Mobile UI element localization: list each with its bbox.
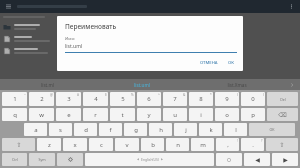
staticText: y [147,111,151,119]
button[interactable]: l [224,123,247,136]
button[interactable]: y [137,108,161,121]
button[interactable]: , [216,138,239,151]
button[interactable]: ▶ [272,153,298,166]
button[interactable]: h [149,123,172,136]
button[interactable]: 0 [241,92,265,106]
button[interactable]: ◀ [244,153,270,166]
button[interactable]: Menu [4,2,13,11]
button[interactable]: p [241,108,265,121]
button[interactable] [0,33,300,45]
button[interactable]: ОТМЕНА [197,58,221,68]
staticText: * [210,93,212,97]
button[interactable]: g [124,123,147,136]
staticText: e [67,111,71,119]
button[interactable] [0,45,300,57]
button[interactable]: 1 [2,92,27,106]
button[interactable]: ОК [225,58,237,68]
staticText: ⌫ [278,111,287,118]
staticText: o [225,111,229,119]
staticText: ◀ [255,156,260,163]
button[interactable]: o [215,108,239,121]
staticText: ▶ [283,156,288,163]
button[interactable]: b [141,138,164,151]
button[interactable]: i [189,108,213,121]
staticText: k [209,126,213,134]
staticText: ? [261,139,263,143]
button[interactable]: n [166,138,189,151]
staticText: ( [237,93,238,97]
button[interactable]: More tabs [284,79,300,90]
staticText: m [200,141,206,149]
staticText: z [48,141,51,149]
staticText: ⇧ [16,141,22,148]
staticText: f [109,126,112,134]
staticText: 3 [67,95,71,103]
button[interactable]: ⇧ [266,138,298,151]
button[interactable]: 3 [56,92,81,106]
button[interactable]: e [56,108,81,121]
button[interactable]: u [163,108,187,121]
button[interactable] [0,21,300,33]
button[interactable]: m [191,138,214,151]
button[interactable]: OK [249,123,295,136]
button[interactable]: k [199,123,222,136]
button[interactable]: list.uml [94,79,189,90]
staticText: p [251,111,255,119]
staticText: ! [237,139,238,143]
button[interactable]: Del [267,92,298,106]
staticText: 8 [199,95,203,103]
button[interactable]: d [74,123,97,136]
staticText: a [34,126,38,134]
staticText: ◀ [137,158,139,161]
button[interactable]: r [83,108,108,121]
staticText: b [151,141,155,149]
button[interactable]: list.Xmas [189,79,284,90]
button[interactable]: Keyboard settings [57,153,83,166]
button[interactable]: x [63,138,87,151]
button[interactable]: More options [287,2,296,11]
button[interactable]: ◀ [85,153,214,166]
button[interactable]: z [37,138,61,151]
button[interactable]: v [115,138,139,151]
staticText: h [159,126,163,134]
staticText: 1 [13,95,17,103]
button[interactable]: Emoji [216,153,242,166]
button[interactable]: 9 [215,92,239,106]
staticText: u [173,111,177,119]
button[interactable]: j [174,123,197,136]
button[interactable]: t [110,108,135,121]
staticText: Переименовать [65,22,117,31]
staticText: ОК [228,60,234,66]
button[interactable]: ⇧ [2,138,35,151]
button[interactable]: q [2,108,27,121]
button[interactable]: f [99,123,122,136]
staticText: list.uml [65,43,83,50]
button[interactable]: 5 [110,92,135,106]
staticText: g [134,126,138,134]
button[interactable]: Ctrl [2,153,27,166]
staticText: 9 [225,95,229,103]
staticText: v [125,141,129,149]
staticText: 0 [251,95,255,103]
button[interactable]: a [24,123,47,136]
button[interactable]: c [89,138,113,151]
staticText: s [59,126,62,134]
button[interactable]: 2 [29,92,54,106]
staticText: 2 [40,95,44,103]
button[interactable]: 6 [137,92,161,106]
button[interactable]: Add [276,148,291,163]
button[interactable]: . [241,138,264,151]
button[interactable]: Sym [29,153,55,166]
staticText: Ctrl [12,157,18,162]
staticText: ) [263,93,264,97]
button[interactable]: w [29,108,54,121]
staticText: @ [50,93,53,97]
button[interactable]: 7 [163,92,187,106]
staticText: , [227,141,229,149]
button[interactable]: 8 [189,92,213,106]
button[interactable]: s [49,123,72,136]
staticText: Sym [38,157,46,162]
button[interactable]: 4 [83,92,108,106]
button[interactable]: ⌫ [267,108,298,121]
